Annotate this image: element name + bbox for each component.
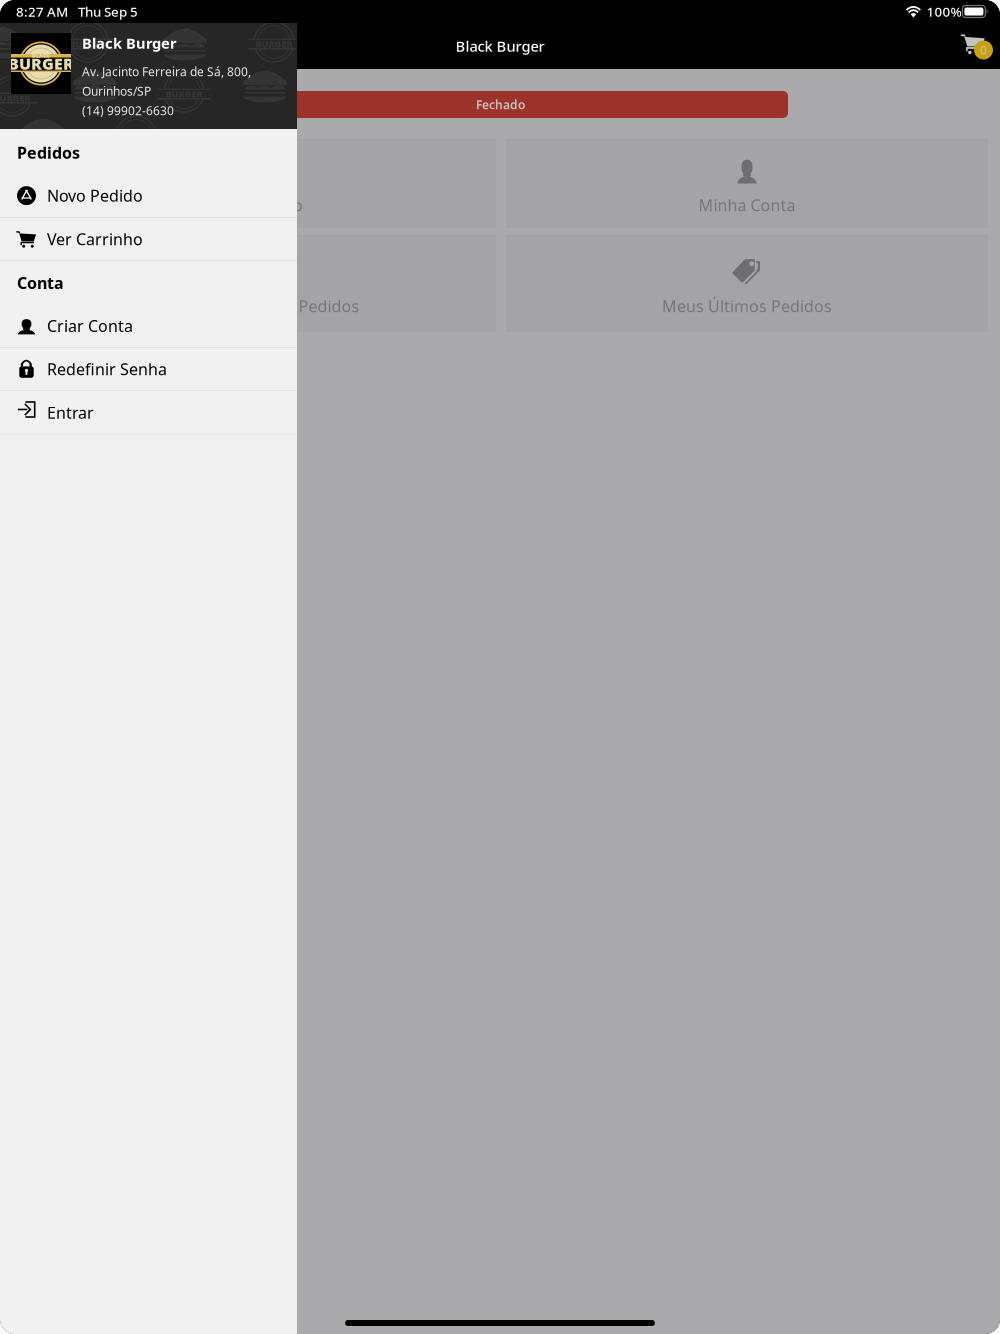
staticText: (14) 99902-6630 <box>82 102 174 118</box>
staticText: Acompanhar Meus Pedidos <box>150 295 359 317</box>
button[interactable]: Novo Pedido <box>14 139 496 228</box>
staticText: 100% <box>926 3 961 20</box>
staticText: Entrar <box>47 402 94 423</box>
staticText: Av. Jacinto Ferreira de Sá, 800, <box>82 63 251 79</box>
staticText: 0 <box>980 42 987 58</box>
staticText: BURGER <box>165 88 202 100</box>
staticText: Redefinir Senha <box>47 358 167 380</box>
staticText: Thu Sep 5 <box>78 3 138 20</box>
staticText: Fechado <box>476 96 525 112</box>
button[interactable]: Carrinho <box>946 30 993 62</box>
button[interactable]: Novo Pedido <box>0 174 297 217</box>
button[interactable]: Redefinir Senha <box>0 348 297 390</box>
staticText: 8:27 AM <box>16 3 68 20</box>
staticText: Meus Últimos Pedidos <box>662 295 832 317</box>
staticText: BURGER <box>8 53 74 74</box>
button[interactable]: Entrar <box>0 391 297 434</box>
staticText: BURGER <box>0 92 30 104</box>
staticText: Novo Pedido <box>47 185 143 206</box>
staticText: Black Burger <box>455 36 544 56</box>
button[interactable]: Minha Conta <box>506 139 988 228</box>
button[interactable]: Fechado <box>14 91 788 118</box>
staticText: Ourinhos/SP <box>82 83 151 99</box>
staticText: BLACK <box>32 52 50 59</box>
staticText: Conta <box>17 272 64 293</box>
button[interactable]: Acompanhar Meus Pedidos <box>14 235 496 332</box>
button[interactable]: Criar Conta <box>0 304 297 347</box>
button[interactable]: Ver Carrinho <box>0 218 297 260</box>
staticText: Minha Conta <box>698 194 795 216</box>
staticText: Black Burger <box>82 33 177 53</box>
staticText: Novo Pedido <box>207 194 303 216</box>
staticText: BURGER <box>69 38 106 50</box>
staticText: BURGER <box>255 38 292 50</box>
staticText: Criar Conta <box>47 315 133 336</box>
button[interactable]: Meus Últimos Pedidos <box>506 235 988 332</box>
staticText: Ver Carrinho <box>47 228 143 250</box>
staticText: Pedidos <box>17 142 80 163</box>
